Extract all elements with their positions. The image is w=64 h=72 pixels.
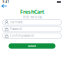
staticText: LOGIN bbox=[28, 44, 36, 48]
staticText: fresh every day bbox=[22, 15, 41, 19]
button[interactable]: Back bbox=[1, 4, 8, 8]
staticText: Username bbox=[10, 20, 23, 24]
staticText: Password bbox=[10, 27, 22, 31]
button[interactable]: LOGIN bbox=[8, 43, 55, 49]
staticText: Confirm password bbox=[10, 34, 34, 37]
staticText: FreshCart bbox=[20, 8, 44, 15]
staticText: 9:41 bbox=[2, 0, 9, 4]
